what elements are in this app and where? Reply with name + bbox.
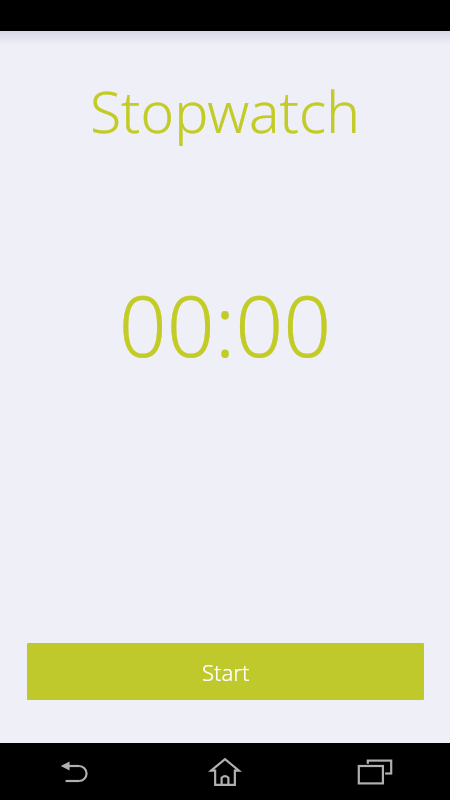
button[interactable]: Recents — [300, 743, 450, 800]
button[interactable]: Back — [0, 743, 150, 800]
staticText: 00:00 — [0, 267, 450, 381]
button[interactable]: Home — [150, 743, 300, 800]
button[interactable]: Start — [27, 643, 424, 700]
staticText: Stopwatch — [0, 72, 450, 150]
staticText: Start — [202, 657, 250, 687]
